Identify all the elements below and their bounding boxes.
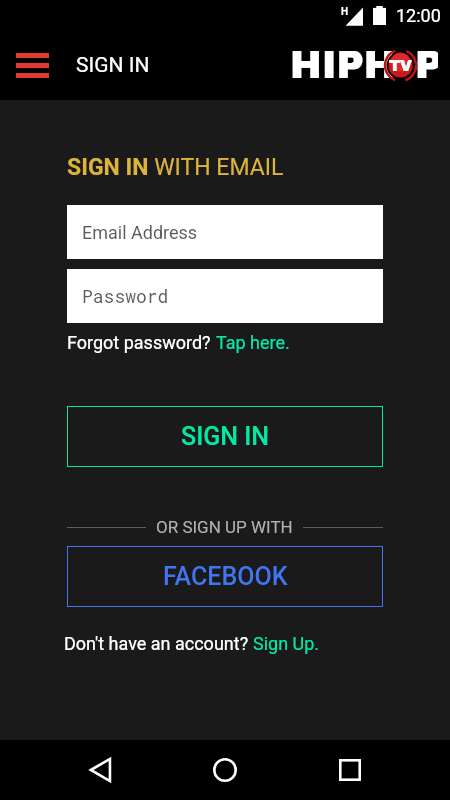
staticText: SIGN IN WITH EMAIL <box>67 154 284 181</box>
staticText: H <box>341 6 349 18</box>
staticText: Password <box>82 284 169 308</box>
button[interactable]: Home <box>195 740 255 800</box>
staticText: TV <box>389 57 412 74</box>
button[interactable]: Recent apps <box>320 740 380 800</box>
button[interactable]: Back <box>70 740 130 800</box>
button[interactable]: Tap here. <box>216 332 290 353</box>
staticText: P <box>415 45 438 81</box>
button[interactable]: Sign Up. <box>253 633 320 654</box>
staticText: OR SIGN UP WITH <box>156 517 293 537</box>
staticText: 12:00 <box>396 5 441 26</box>
staticText: SIGN IN <box>76 53 150 78</box>
button[interactable]: FACEBOOK <box>67 546 383 607</box>
button[interactable]: Open navigation menu <box>16 45 49 86</box>
button[interactable]: Email Address <box>67 205 383 259</box>
staticText: Forgot password? <box>67 332 216 353</box>
staticText: Email Address <box>82 222 198 243</box>
staticText: FACEBOOK <box>163 562 288 591</box>
staticText: HIPH <box>290 45 396 81</box>
button[interactable]: Password <box>67 269 383 323</box>
button[interactable]: SIGN IN <box>67 406 383 467</box>
staticText: Don't have an account? <box>64 633 253 654</box>
staticText: SIGN IN <box>181 422 270 451</box>
